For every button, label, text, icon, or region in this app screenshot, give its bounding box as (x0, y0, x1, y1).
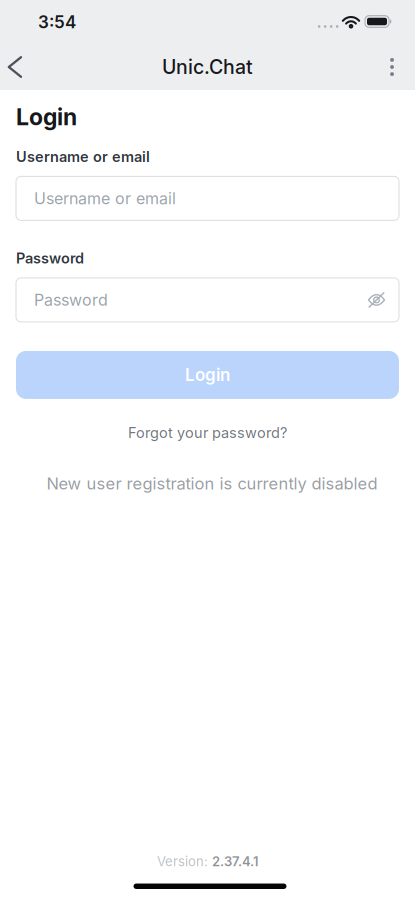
button[interactable]: Forgot your password? (16, 424, 399, 441)
staticText: 3:54 (38, 12, 76, 32)
staticText: Forgot your password? (128, 424, 287, 441)
staticText: Version: (157, 854, 208, 869)
staticText: Unic.Chat (162, 55, 253, 79)
staticText: Username or email (34, 189, 176, 208)
staticText: Username or email (16, 148, 150, 165)
staticText: 2.37.4.1 (212, 854, 258, 869)
staticText: Password (34, 290, 108, 310)
button[interactable]: Back (0, 44, 37, 90)
staticText: New user registration is currently disab… (46, 473, 377, 493)
button[interactable]: More options (376, 44, 415, 90)
staticText: Login (16, 103, 77, 131)
button[interactable]: Password (16, 278, 399, 322)
button[interactable]: Show password (368, 292, 399, 308)
button[interactable]: Username or email (16, 176, 399, 220)
staticText: Login (185, 365, 230, 385)
staticText: Password (16, 249, 84, 267)
button[interactable]: Login (16, 351, 399, 399)
